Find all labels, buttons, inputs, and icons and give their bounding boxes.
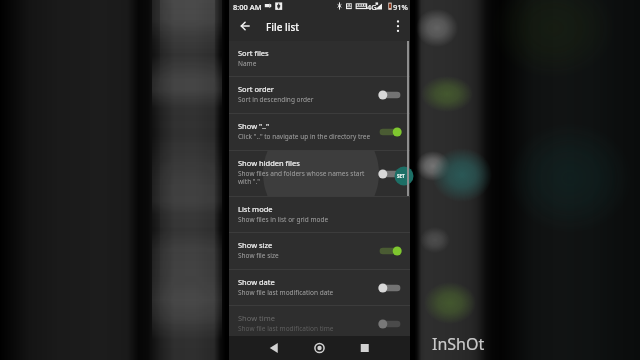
button[interactable]: Back [262,336,286,360]
button[interactable]: Sort order [229,77,410,113]
staticText: Sort order [238,84,274,94]
staticText: InShOt [432,333,485,355]
button[interactable]: More options [388,17,407,36]
button[interactable]: Back [236,17,255,36]
staticText: 4G [367,2,377,12]
button[interactable]: Show ".." [229,114,410,150]
staticText: SET [397,173,405,179]
staticText: List mode [238,204,273,214]
button[interactable]: Toggle [378,243,402,259]
staticText: Show file last modification date [238,288,373,297]
staticText: Sort files [238,48,269,58]
button[interactable]: Toggle [378,316,402,332]
button[interactable]: Toggle [378,280,402,296]
staticText: Show hidden files [238,158,300,168]
staticText: 91% [393,2,408,12]
button[interactable]: Show hidden files [229,151,410,196]
staticText: Sort in descending order [238,95,373,104]
staticText: Show size [238,240,273,250]
staticText: Click ".." to navigate up in the directo… [238,132,373,141]
staticText: Show ".." [238,121,270,131]
button[interactable]: Toggle [378,166,402,182]
staticText: Show files in list or grid mode [238,215,373,224]
staticText: Show files and folders whose names start… [238,169,373,186]
staticText: Show time [238,313,275,323]
button[interactable]: Recents [353,336,377,360]
button[interactable]: Sort files [229,41,410,76]
button[interactable]: Show date [229,270,410,305]
button[interactable]: Show size [229,233,410,269]
staticText: 8:00 AM [233,2,262,12]
button[interactable]: Toggle [378,124,402,140]
staticText: Show file size [238,251,373,260]
staticText: File list [266,20,300,34]
button[interactable]: Home [308,336,332,360]
staticText: Show file last modification time [238,324,373,333]
button[interactable]: List mode [229,197,410,232]
button[interactable]: Toggle [378,87,402,103]
staticText: Name [238,59,373,68]
button[interactable]: Show time [229,306,410,342]
staticText: Show date [238,277,275,287]
